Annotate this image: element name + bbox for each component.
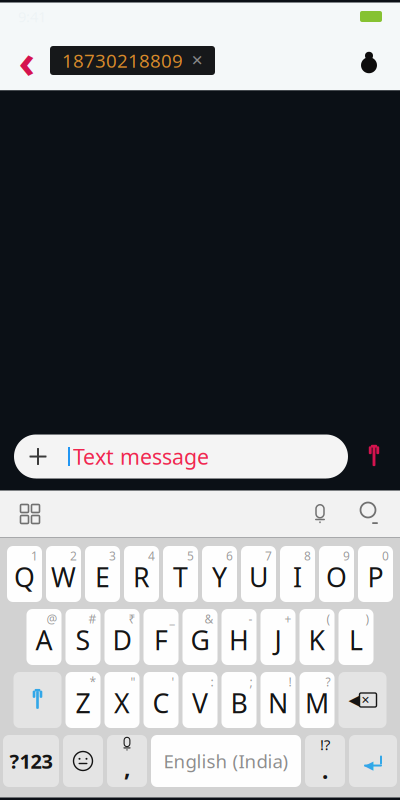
staticText: * bbox=[89, 674, 96, 690]
button[interactable]: 18730218809 bbox=[50, 46, 215, 75]
staticText: X bbox=[114, 685, 130, 721]
staticText: 8 bbox=[304, 548, 311, 564]
button[interactable]: : bbox=[182, 672, 217, 728]
button[interactable]: 5 bbox=[163, 546, 198, 602]
staticText: ? bbox=[325, 674, 330, 690]
staticText: L bbox=[349, 622, 363, 658]
staticText: Text message bbox=[73, 442, 209, 471]
button[interactable]: Text message bbox=[14, 434, 348, 478]
button[interactable]: English (India) bbox=[151, 735, 301, 787]
button[interactable]: Send bbox=[352, 434, 396, 478]
staticText: - bbox=[248, 611, 252, 627]
button[interactable]: ◀ bbox=[349, 735, 397, 787]
staticText: . bbox=[322, 755, 328, 785]
button[interactable]: ( bbox=[299, 609, 334, 665]
staticText: P bbox=[367, 559, 383, 595]
button[interactable]: 7 bbox=[241, 546, 276, 602]
staticText: 4 bbox=[148, 548, 155, 564]
staticText: " bbox=[130, 674, 135, 690]
staticText: N bbox=[268, 685, 288, 721]
button[interactable]: 9 bbox=[319, 546, 354, 602]
staticText: ' bbox=[171, 674, 174, 690]
staticText: S bbox=[75, 622, 90, 658]
button[interactable]: Keyboard layouts bbox=[12, 496, 48, 532]
staticText: Q bbox=[14, 559, 35, 595]
button[interactable]: !? bbox=[305, 735, 345, 787]
staticText: ◀ bbox=[348, 692, 359, 708]
staticText: 1 bbox=[31, 548, 38, 564]
staticText: T bbox=[173, 559, 188, 595]
button[interactable]: 3 bbox=[85, 546, 120, 602]
button[interactable] bbox=[63, 735, 103, 787]
staticText: H bbox=[229, 622, 249, 658]
staticText: K bbox=[308, 622, 325, 658]
staticText: J bbox=[274, 622, 281, 658]
button[interactable]: Back bbox=[10, 43, 44, 77]
staticText: , bbox=[124, 753, 130, 783]
button[interactable]: ? bbox=[299, 672, 334, 728]
staticText: Z bbox=[75, 685, 90, 721]
staticText: ◀ bbox=[364, 758, 373, 772]
staticText: ₹ bbox=[128, 611, 135, 627]
button[interactable]: ◀ bbox=[338, 672, 386, 728]
staticText: F bbox=[154, 622, 168, 658]
staticText: @ bbox=[46, 611, 57, 627]
button[interactable]: Search bbox=[350, 496, 386, 532]
button[interactable]: ) bbox=[338, 609, 373, 665]
staticText: ) bbox=[365, 611, 369, 627]
button[interactable]: Voice input bbox=[302, 496, 338, 532]
staticText: 7 bbox=[265, 548, 272, 564]
button[interactable]: _ bbox=[143, 609, 178, 665]
button[interactable]: ! bbox=[260, 672, 295, 728]
button[interactable]: @ bbox=[26, 609, 61, 665]
staticText: E bbox=[95, 559, 110, 595]
staticText: U bbox=[249, 559, 268, 595]
button[interactable]: + bbox=[260, 609, 295, 665]
staticText: O bbox=[326, 559, 347, 595]
staticText: C bbox=[152, 685, 169, 721]
button[interactable]: 8 bbox=[280, 546, 315, 602]
staticText: ?123 bbox=[9, 748, 52, 774]
button[interactable]: ' bbox=[143, 672, 178, 728]
button[interactable]: 4 bbox=[124, 546, 159, 602]
button[interactable]: Contact info bbox=[352, 43, 386, 77]
staticText: 2 bbox=[70, 548, 77, 564]
button[interactable]: 6 bbox=[202, 546, 237, 602]
button[interactable]: 1 bbox=[7, 546, 42, 602]
staticText: 5 bbox=[187, 548, 194, 564]
staticText: I bbox=[293, 559, 302, 595]
staticText: + bbox=[284, 611, 291, 627]
staticText: 0 bbox=[382, 548, 389, 564]
staticText: 6 bbox=[226, 548, 233, 564]
button[interactable]: ; bbox=[221, 672, 256, 728]
staticText: G bbox=[190, 622, 209, 658]
button[interactable]: " bbox=[104, 672, 139, 728]
staticText: & bbox=[204, 611, 213, 627]
button[interactable]: ₹ bbox=[104, 609, 139, 665]
button[interactable]: & bbox=[182, 609, 217, 665]
button[interactable]: , bbox=[107, 735, 147, 787]
button[interactable]: - bbox=[221, 609, 256, 665]
staticText: ( bbox=[326, 611, 330, 627]
staticText: M bbox=[305, 685, 329, 721]
staticText: ✕ bbox=[191, 52, 203, 69]
staticText: 18730218809 bbox=[62, 48, 183, 73]
staticText: R bbox=[133, 559, 150, 595]
staticText: W bbox=[51, 559, 76, 595]
button[interactable]: ?123 bbox=[3, 735, 59, 787]
staticText: V bbox=[192, 685, 208, 721]
staticText: A bbox=[35, 622, 52, 658]
staticText: : bbox=[210, 674, 213, 690]
staticText: _ bbox=[169, 611, 174, 627]
staticText: ! bbox=[288, 674, 291, 690]
button[interactable]: # bbox=[65, 609, 100, 665]
staticText: !? bbox=[320, 735, 330, 754]
staticText: D bbox=[112, 622, 131, 658]
button[interactable]: * bbox=[65, 672, 100, 728]
button[interactable]: 2 bbox=[46, 546, 81, 602]
button[interactable]: 0 bbox=[358, 546, 393, 602]
staticText: ✕ bbox=[361, 694, 370, 706]
staticText: 9 bbox=[343, 548, 350, 564]
staticText: # bbox=[88, 611, 96, 627]
button[interactable] bbox=[13, 672, 61, 728]
